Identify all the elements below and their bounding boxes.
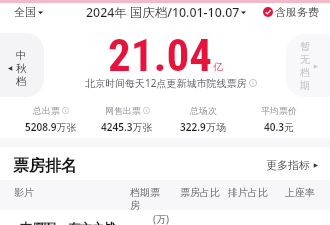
staticText: 票房排名	[13, 156, 77, 174]
button[interactable]: 总场次	[165, 105, 241, 134]
staticText: 含服务费	[275, 5, 319, 19]
staticText: 上座率	[285, 186, 315, 199]
staticText: 322.9万场	[180, 120, 226, 134]
staticText: 更多指标	[266, 158, 310, 172]
staticText: (万)	[153, 212, 169, 225]
button[interactable]: 全国	[14, 5, 43, 19]
staticText: 21.04	[108, 29, 213, 82]
staticText: 全国	[14, 5, 36, 19]
button[interactable]: 平均票价	[241, 105, 317, 134]
staticText: 亿	[213, 60, 223, 73]
staticText: 档	[16, 75, 27, 88]
staticText: 网售出票	[105, 105, 141, 116]
staticText: 4245.3万张	[101, 120, 153, 134]
button[interactable]: 总出票	[13, 105, 89, 134]
staticText: 排片占比	[228, 186, 268, 199]
staticText: 40.3元	[264, 120, 294, 134]
button[interactable]: 更多指标	[266, 158, 318, 172]
staticText: 票房占比	[180, 186, 220, 199]
staticText: 2024年 国庆档/10.01-10.07	[86, 4, 240, 20]
staticText: 志愿军：存亡之战	[20, 220, 116, 225]
staticText: 影片	[14, 186, 34, 199]
staticText: 暂	[300, 40, 310, 53]
button[interactable]: 暂	[286, 34, 330, 97]
staticText: 期	[300, 79, 310, 92]
staticText: 总出票	[33, 105, 60, 116]
staticText: 平均票价	[261, 105, 297, 116]
staticText: 中	[16, 49, 27, 62]
button[interactable]: 中	[0, 33, 44, 97]
staticText: 档	[300, 66, 310, 79]
button[interactable]: 网售出票	[89, 105, 165, 134]
staticText: 总场次	[190, 105, 217, 116]
staticText: 无	[300, 53, 310, 66]
staticText: 北京时间每天12点更新城市院线票房	[85, 76, 247, 90]
staticText: 档期票房	[130, 186, 169, 212]
button[interactable]: 2024年 国庆档/10.01-10.07	[86, 4, 246, 20]
button[interactable]: 含服务费	[263, 5, 319, 19]
staticText: 秋	[16, 62, 27, 75]
staticText: 5208.9万张	[25, 120, 77, 134]
